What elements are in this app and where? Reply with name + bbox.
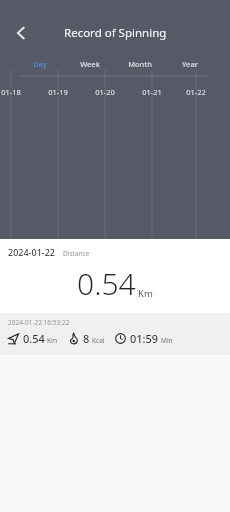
staticText: Year — [182, 59, 198, 69]
staticText: Distance — [63, 249, 90, 258]
staticText: Week — [80, 59, 100, 69]
staticText: Km — [47, 336, 58, 345]
button[interactable]: 2024-01-22 16:53:22 — [0, 313, 230, 355]
staticText: Km — [138, 287, 153, 300]
other: Duration — [115, 333, 126, 344]
staticText: 01-20 — [95, 87, 115, 97]
button[interactable]: Day — [20, 57, 60, 71]
staticText: 01-19 — [48, 87, 68, 97]
staticText: Min — [161, 336, 173, 345]
other: Calories — [68, 333, 79, 344]
button[interactable]: Week — [70, 57, 110, 71]
staticText: 01-21 — [142, 87, 162, 97]
staticText: 2024-01-22 16:53:22 — [8, 318, 70, 327]
staticText: 0.54 — [77, 263, 136, 304]
staticText: 01-22 — [186, 87, 206, 97]
staticText: 2024-01-22 — [8, 246, 55, 258]
staticText: 01-18 — [1, 87, 21, 97]
button[interactable]: Month — [120, 57, 160, 71]
staticText: 0.54 — [23, 331, 45, 346]
button[interactable]: Back — [4, 18, 38, 48]
other: Distance — [8, 333, 19, 344]
staticText: Record of Spinning — [64, 25, 167, 41]
staticText: Kcal — [92, 336, 105, 345]
button[interactable]: Year — [170, 57, 210, 71]
staticText: 01:59 — [130, 331, 159, 346]
staticText: Month — [128, 59, 152, 69]
staticText: Day — [33, 59, 47, 69]
staticText: 8 — [83, 331, 90, 346]
